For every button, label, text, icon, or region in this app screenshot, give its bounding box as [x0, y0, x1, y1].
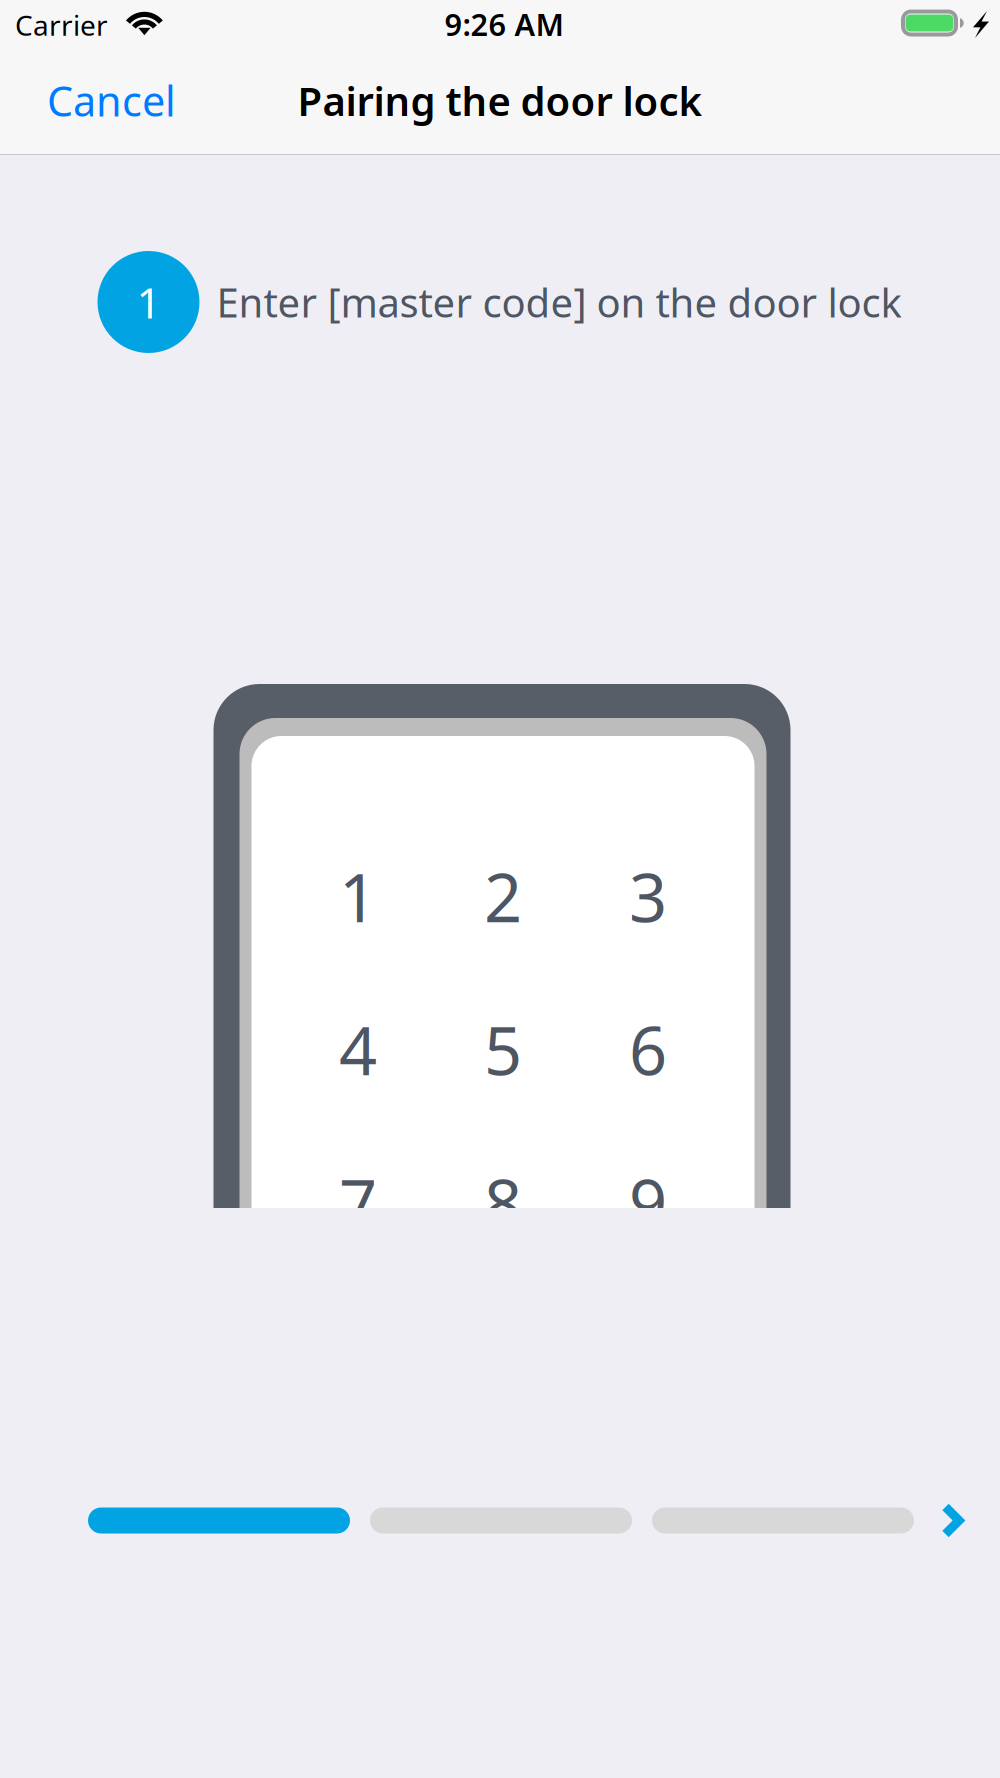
staticText: 9 [629, 1158, 667, 1247]
staticText: 7 [339, 1158, 377, 1247]
staticText: 9:26 AM [444, 4, 563, 44]
staticText: 1 [339, 852, 377, 941]
staticText: Pairing the door lock [297, 74, 702, 127]
staticText: 6 [629, 1005, 667, 1094]
staticText: Cancel [47, 73, 176, 128]
staticText: 5 [484, 1005, 522, 1094]
staticText: 1 [136, 274, 160, 330]
staticText: 4 [339, 1005, 377, 1094]
staticText: Carrier [15, 6, 108, 44]
staticText: Enter [master code] on the door lock [216, 275, 901, 328]
button[interactable]: Cancel [33, 55, 190, 146]
staticText: 3 [629, 852, 667, 941]
staticText: 8 [484, 1158, 522, 1247]
button[interactable]: Next step [922, 1479, 982, 1561]
staticText: 2 [484, 852, 522, 941]
